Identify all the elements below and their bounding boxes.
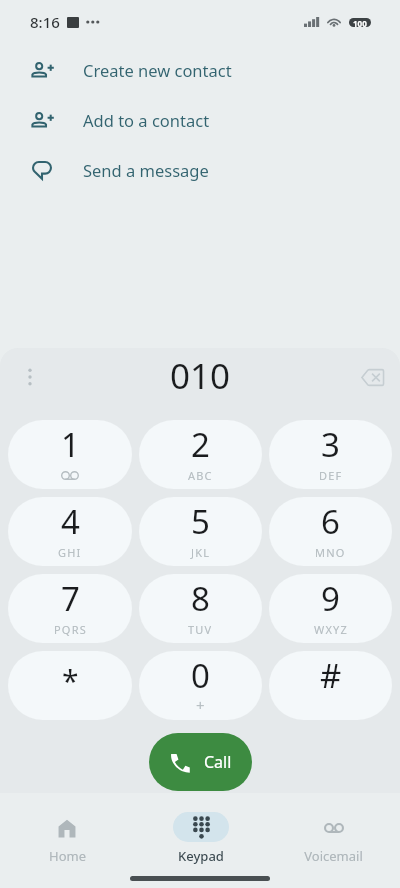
button[interactable]: Send a message (0, 145, 400, 195)
staticText: 5 (191, 499, 210, 544)
staticText: # (320, 653, 342, 698)
button[interactable]: 9 (269, 574, 392, 643)
staticText: Send a message (83, 159, 209, 181)
button[interactable]: Add to a contact (0, 95, 400, 145)
staticText: 8:16 (30, 12, 60, 32)
button[interactable]: 2 (139, 420, 262, 489)
staticText: Voicemail (304, 847, 363, 865)
staticText: Add to a contact (83, 109, 210, 131)
button[interactable]: 4 (8, 497, 132, 566)
staticText: WXYZ (314, 622, 348, 637)
staticText: DEF (319, 468, 343, 483)
staticText: JKL (191, 545, 211, 560)
staticText: 2 (191, 422, 210, 467)
button[interactable]: Keypad (134, 812, 267, 865)
staticText: * (62, 660, 79, 701)
button[interactable]: Home (0, 812, 134, 865)
staticText: Keypad (178, 847, 224, 865)
staticText: Home (49, 847, 86, 865)
staticText: 1 (61, 422, 80, 467)
staticText: 6 (321, 499, 340, 544)
staticText: + (196, 695, 205, 715)
staticText: 0 (191, 653, 210, 698)
button[interactable]: 7 (8, 574, 132, 643)
button[interactable]: # (269, 651, 392, 720)
button[interactable]: 8 (139, 574, 262, 643)
button[interactable]: * (8, 651, 132, 720)
staticText: 3 (321, 422, 340, 467)
button[interactable]: Call (149, 733, 252, 791)
staticText: MNO (315, 545, 346, 560)
button[interactable]: Voicemail (267, 812, 400, 865)
button[interactable]: Create new contact (0, 45, 400, 95)
staticText: Call (204, 751, 232, 773)
button[interactable]: Backspace (355, 360, 389, 394)
staticText: 010 (170, 352, 231, 400)
staticText: 9 (321, 576, 340, 621)
staticText: ABC (188, 468, 213, 483)
button[interactable]: 5 (139, 497, 262, 566)
staticText: 100 (353, 18, 367, 27)
button[interactable]: More options (16, 363, 44, 391)
staticText: TUV (188, 622, 213, 637)
button[interactable]: 0 (139, 651, 262, 720)
staticText: PQRS (54, 622, 87, 637)
staticText: GHI (58, 545, 82, 560)
button[interactable]: 3 (269, 420, 392, 489)
staticText: 4 (61, 499, 80, 544)
staticText: Create new contact (83, 59, 232, 81)
staticText: 7 (61, 576, 80, 621)
button[interactable]: 6 (269, 497, 392, 566)
button[interactable]: 1 (8, 420, 132, 489)
staticText: 8 (191, 576, 210, 621)
